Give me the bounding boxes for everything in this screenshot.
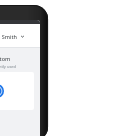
staticText: Recently used [0,64,17,69]
button[interactable]: Account avatar [0,72,34,110]
button[interactable]: Custom [0,55,11,62]
button[interactable]: Brad Smith [0,31,28,42]
staticText: Custom [0,55,11,62]
staticText: Brad Smith [0,33,18,40]
other: Change account [20,34,25,39]
other: Account avatar [0,84,4,98]
